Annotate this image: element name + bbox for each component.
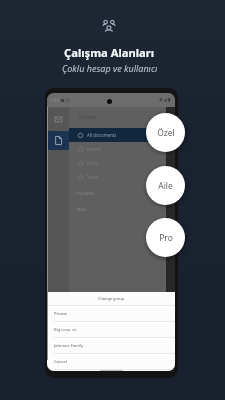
staticText: Johnson Family [54,343,84,349]
button[interactable]: Cancel [47,354,175,370]
button[interactable]: All documents [69,128,166,142]
staticText: Private [79,114,96,121]
button[interactable]: Private [47,306,175,322]
staticText: Change group [98,296,125,301]
staticText: Trash [87,174,99,180]
other: Workspaces [103,20,116,34]
button[interactable]: Pro [146,218,185,257]
button[interactable]: Big corp. co [47,322,175,338]
button[interactable]: Johnson Family [47,338,175,354]
staticText: Public [87,160,100,166]
staticText: 1:34 [50,97,59,103]
staticText: Çalışma Alanları [64,45,155,60]
staticText: Big corp. co [54,327,77,333]
button[interactable]: Özel [146,113,185,152]
staticText: Pro [159,232,173,244]
staticText: TAGS [76,207,86,213]
button[interactable]: Recent [69,142,166,156]
staticText: Özel [157,127,175,139]
button[interactable]: Aile [146,166,185,205]
staticText: Private [54,311,68,317]
staticText: All documents [87,132,117,138]
button[interactable]: Trash [69,170,166,184]
button[interactable]: Public [69,156,166,170]
staticText: Cancel [54,359,67,365]
staticText: Aile [158,180,173,192]
staticText: Recent [87,146,102,152]
button[interactable]: Mail [48,111,68,127]
staticText: FOLDERS [76,191,94,197]
button[interactable]: Documents [48,131,69,150]
staticText: Çoklu hesap ve kullanıcı [62,62,158,74]
